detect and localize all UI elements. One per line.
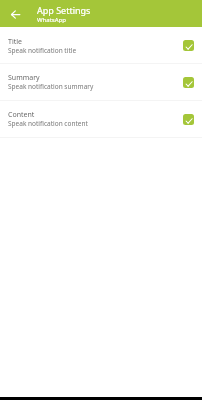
button[interactable]: Content — [0, 101, 202, 137]
staticText: Speak notification summary — [8, 82, 94, 91]
staticText: Speak notification content — [8, 119, 88, 128]
button[interactable]: Toggle — [183, 77, 194, 88]
button[interactable]: Summary — [0, 64, 202, 100]
staticText: App Settings — [37, 4, 91, 16]
staticText: WhatsApp — [37, 16, 66, 24]
staticText: Speak notification title — [8, 46, 77, 55]
staticText: Content — [8, 110, 35, 120]
button[interactable]: Back — [6, 5, 24, 23]
button[interactable]: Title — [0, 27, 202, 63]
button[interactable]: Toggle — [183, 40, 194, 51]
staticText: Summary — [8, 73, 40, 83]
button[interactable]: Toggle — [183, 114, 194, 125]
staticText: Title — [8, 37, 22, 47]
